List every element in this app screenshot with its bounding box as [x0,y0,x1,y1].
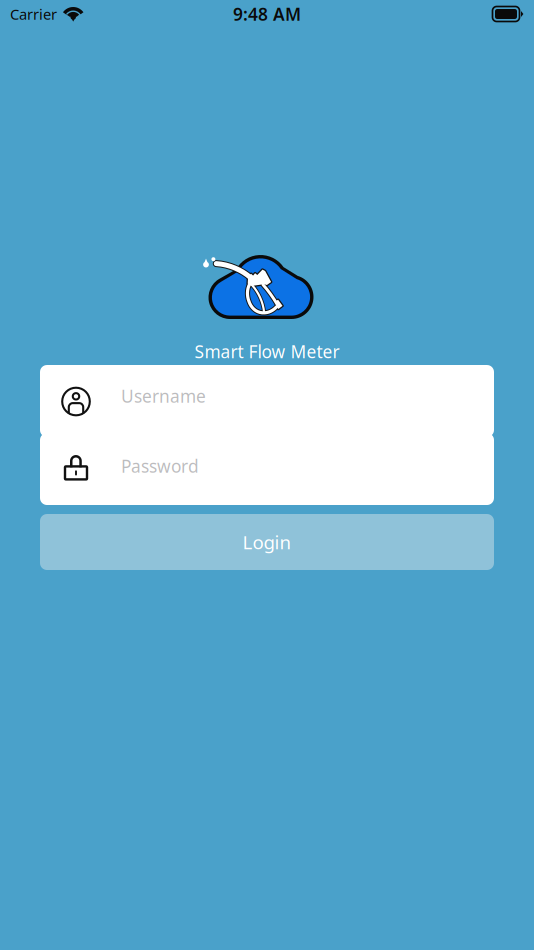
staticText: 9:48 AM [233,2,301,25]
staticText: Password [121,454,199,477]
staticText: Username [121,384,206,407]
button[interactable]: Password [40,435,494,505]
button[interactable]: Username [40,365,494,435]
staticText: Login [242,530,291,554]
staticText: Carrier [10,4,57,24]
staticText: Smart Flow Meter [194,340,339,363]
button[interactable]: Login [40,514,494,570]
